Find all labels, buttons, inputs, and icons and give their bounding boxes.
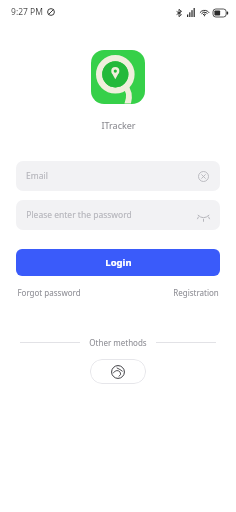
staticText: ITracker [101, 119, 136, 131]
staticText: 9:27 PM [11, 6, 43, 18]
button[interactable]: Login [16, 249, 220, 276]
button[interactable]: Please enter the password [16, 200, 220, 230]
staticText: Registration [173, 287, 219, 298]
button[interactable]: Show password [196, 208, 210, 222]
other: ITracker logo [91, 50, 145, 104]
button[interactable]: Registration [172, 284, 220, 301]
button[interactable]: Email [16, 161, 220, 191]
staticText: Email [26, 170, 48, 182]
button[interactable]: Sign in with WeChat [90, 359, 146, 384]
button[interactable]: Clear email [196, 169, 210, 183]
staticText: Please enter the password [26, 209, 132, 221]
staticText: Login [105, 256, 132, 269]
button[interactable]: Forgot password [16, 284, 82, 301]
staticText: Other methods [89, 337, 147, 348]
staticText: Forgot password [17, 287, 81, 298]
